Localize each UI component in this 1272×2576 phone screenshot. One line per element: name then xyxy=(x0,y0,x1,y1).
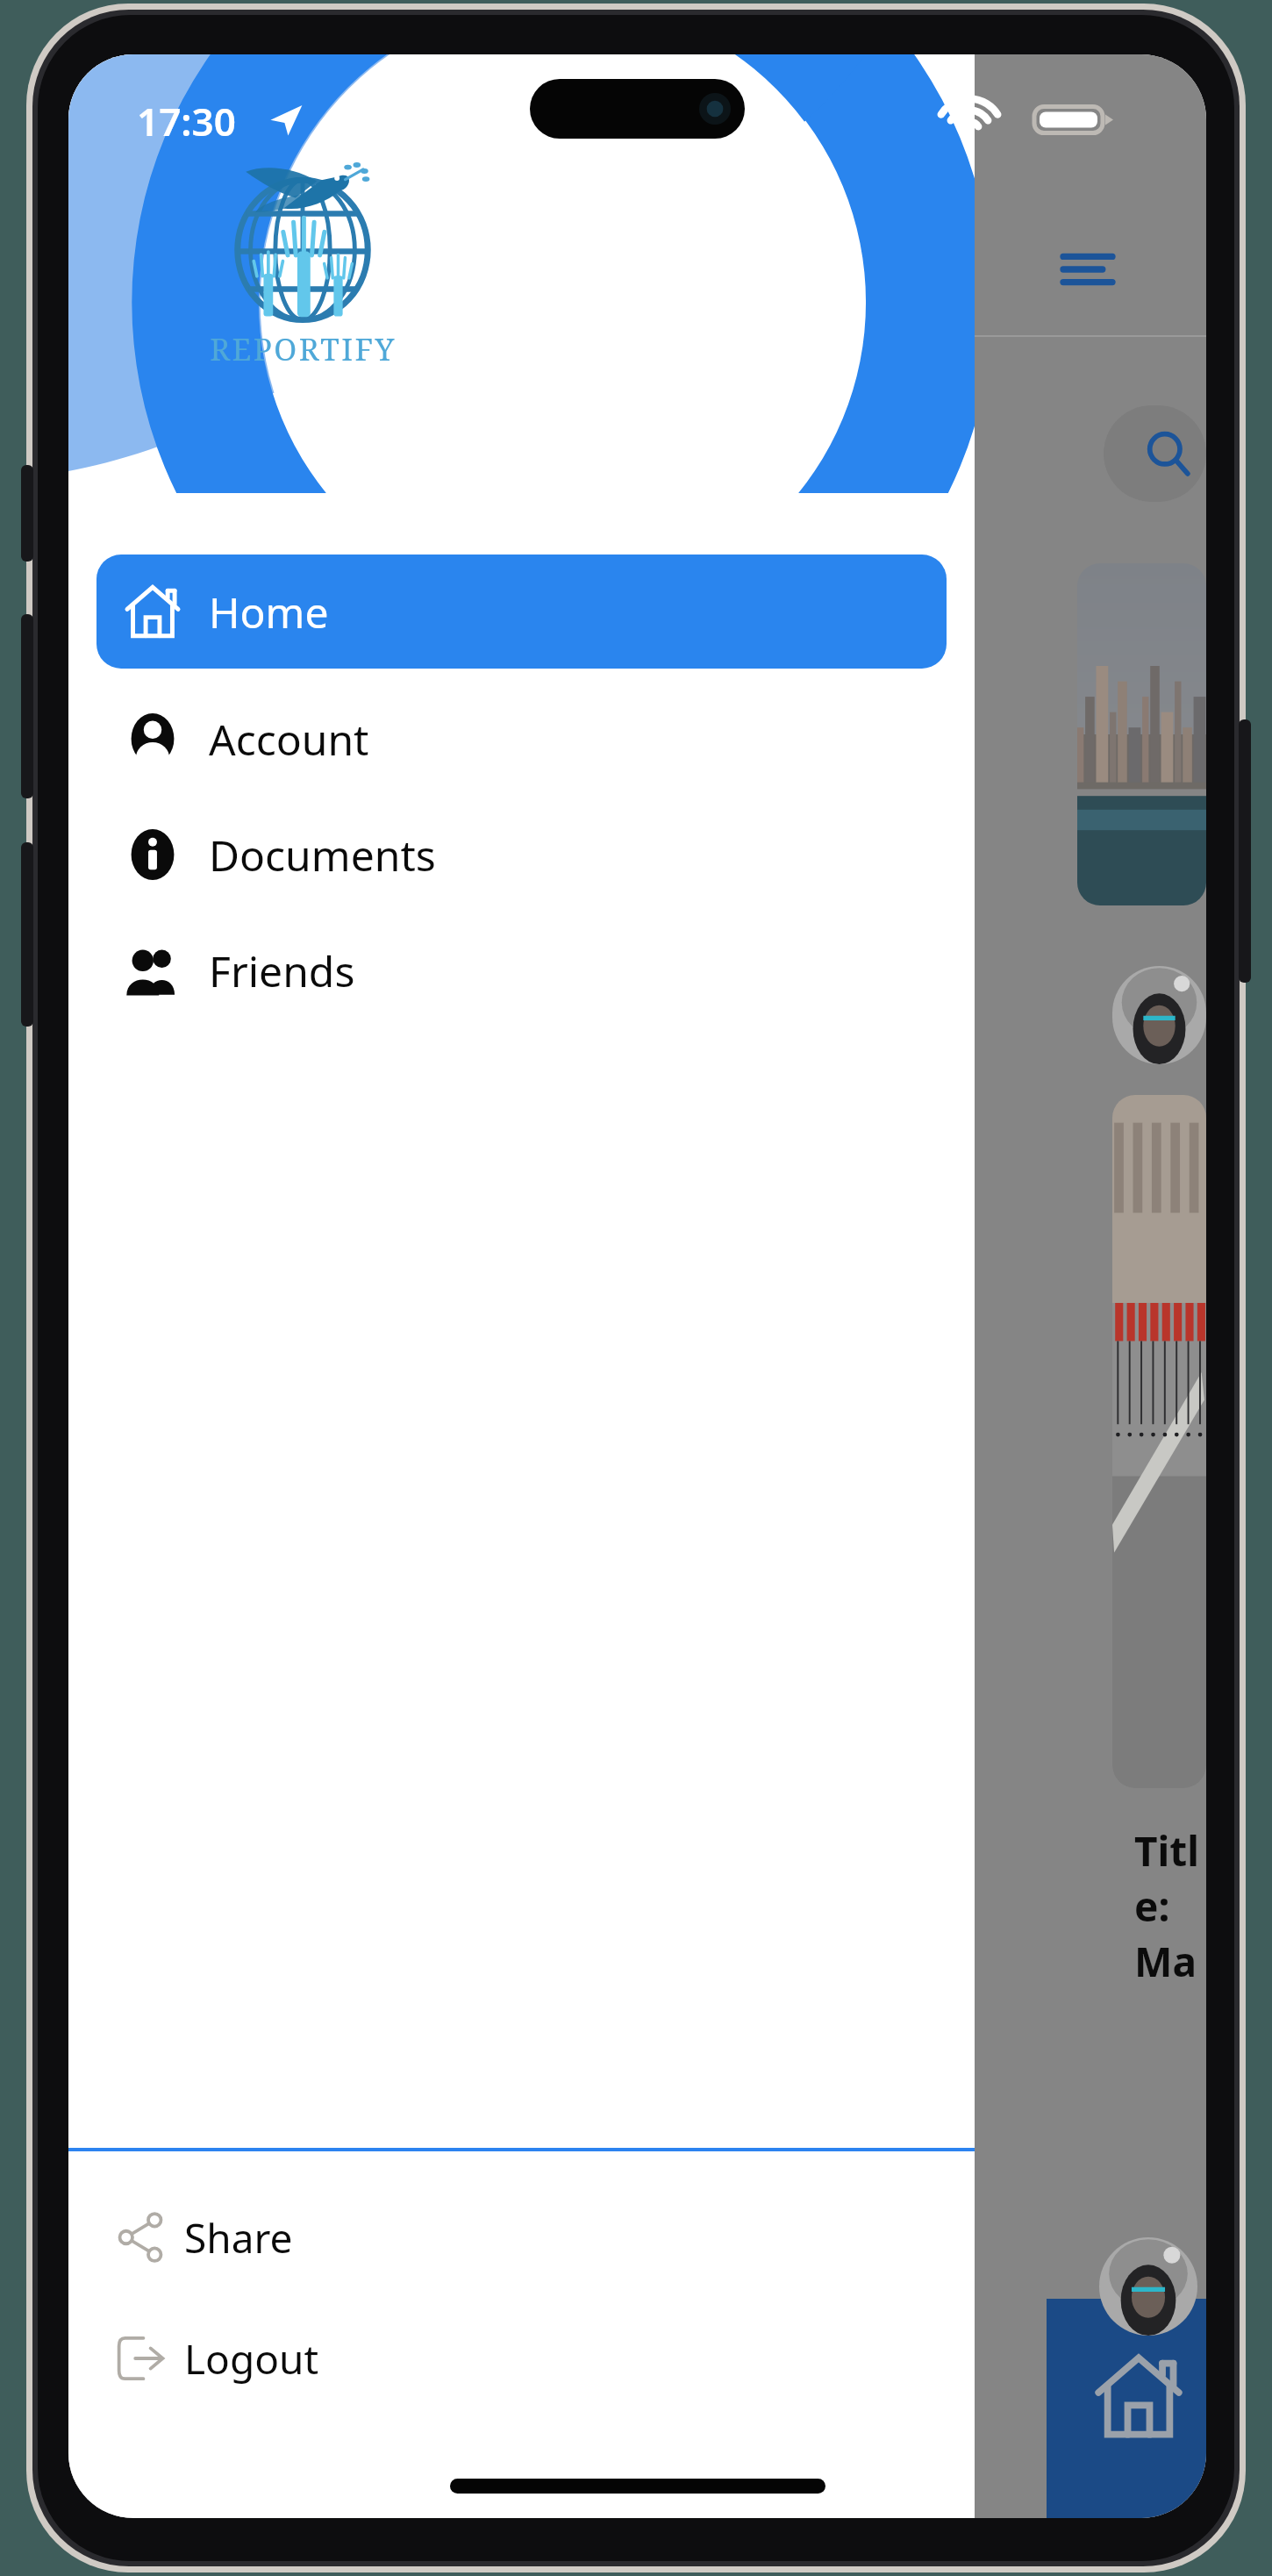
button[interactable] xyxy=(1112,1095,1206,1788)
staticText: Friends xyxy=(209,942,355,999)
button[interactable]: Friends xyxy=(96,925,947,1016)
button[interactable]: Menu xyxy=(1053,234,1123,304)
staticText: Logout xyxy=(184,2331,319,2386)
button[interactable]: Home xyxy=(96,555,947,669)
staticText: Title: Ma xyxy=(1134,1823,1206,1989)
button[interactable] xyxy=(1104,405,1206,502)
staticText: Documents xyxy=(209,826,436,884)
staticText: 17:30 xyxy=(137,95,236,147)
staticText: Account xyxy=(209,711,369,768)
staticText: REPORTIFY xyxy=(210,328,397,370)
button[interactable] xyxy=(1077,563,1206,905)
button[interactable]: Documents xyxy=(96,809,947,900)
button[interactable]: Home xyxy=(1082,2339,1196,2453)
button[interactable]: Share xyxy=(96,2192,947,2283)
button[interactable]: Account xyxy=(96,693,947,784)
staticText: Share xyxy=(184,2210,293,2265)
staticText: Home xyxy=(209,583,329,640)
button[interactable]: Logout xyxy=(96,2313,947,2404)
